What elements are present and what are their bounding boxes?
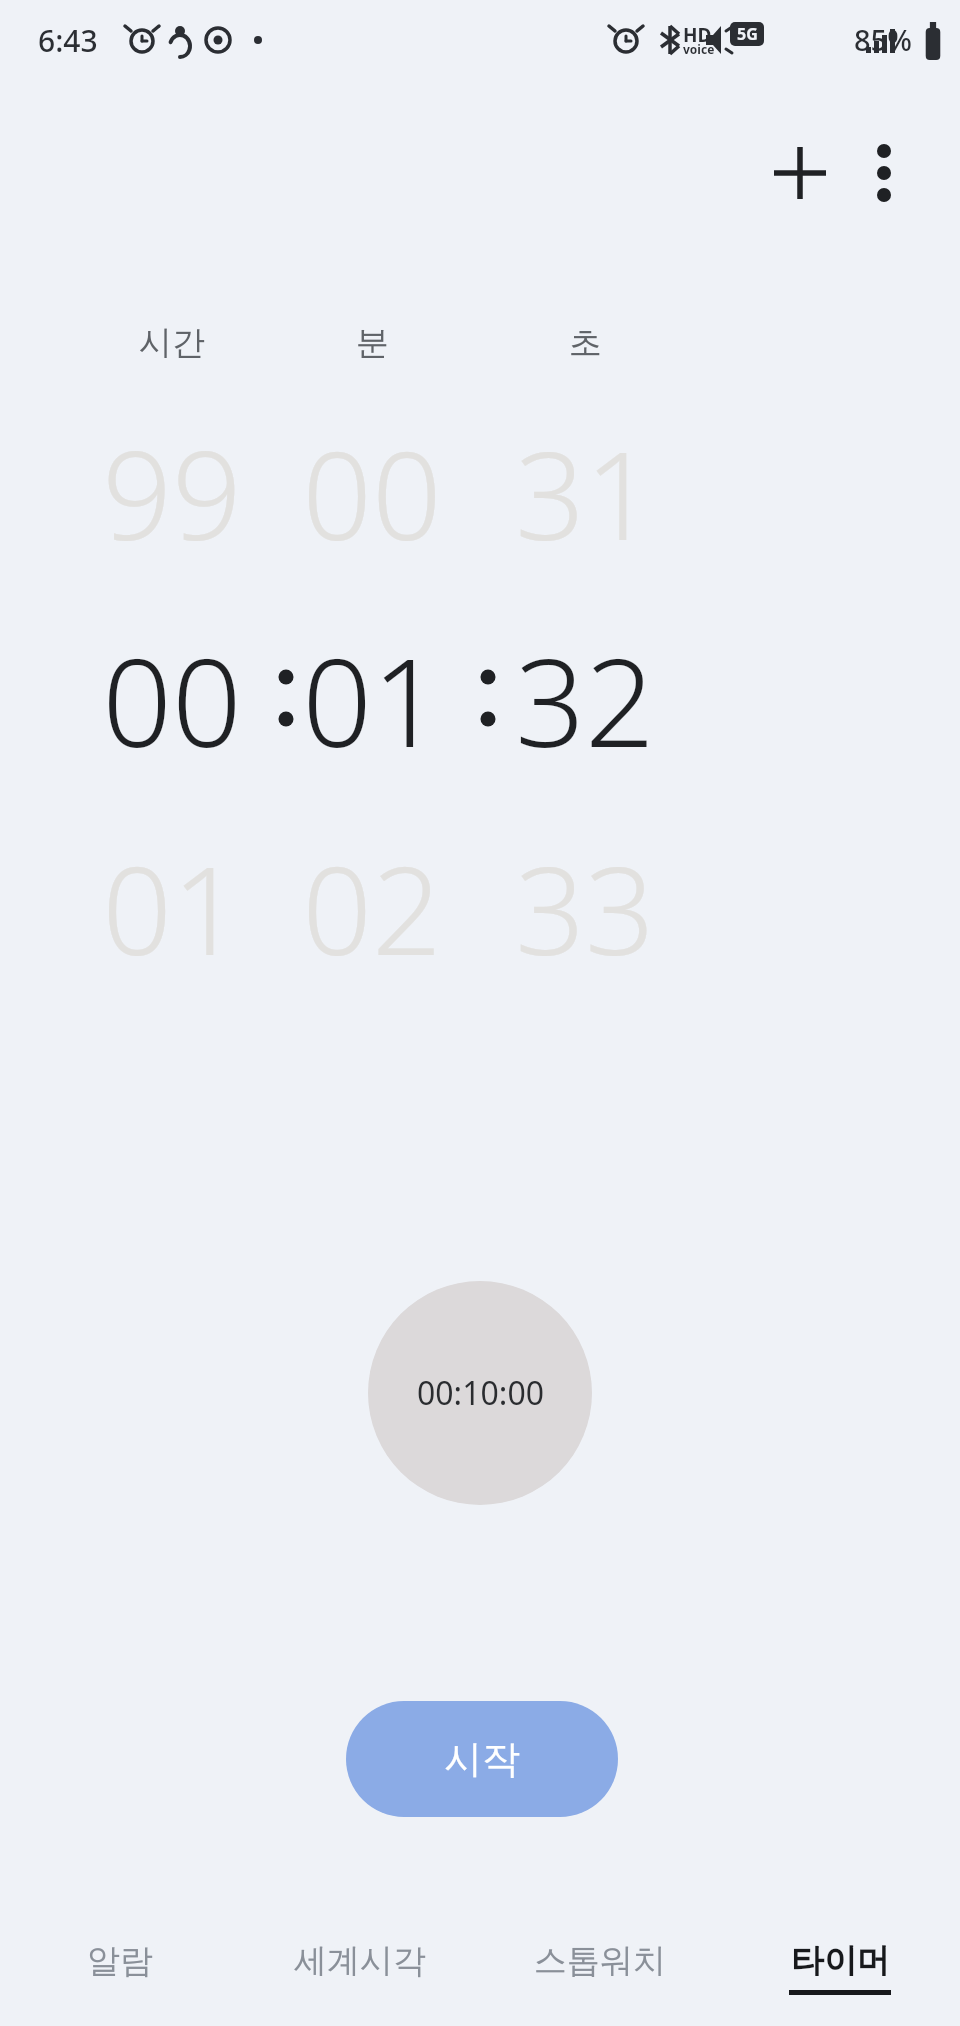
staticText: 00 bbox=[302, 410, 442, 570]
staticText: 01 bbox=[302, 617, 442, 777]
button[interactable]: 33 bbox=[475, 825, 695, 985]
staticText: 6:43 bbox=[38, 20, 98, 61]
button[interactable]: 99 bbox=[62, 410, 282, 570]
staticText: 33 bbox=[515, 825, 655, 985]
staticText: 99 bbox=[102, 410, 242, 570]
staticText: voice bbox=[683, 41, 715, 57]
button[interactable]: 00 bbox=[62, 617, 282, 777]
staticText: 타이머 bbox=[791, 1940, 890, 1982]
staticText: 알람 bbox=[87, 1940, 153, 1982]
staticText: 85% bbox=[854, 20, 912, 59]
button[interactable]: 32 bbox=[475, 617, 695, 777]
button[interactable]: 스톱워치 bbox=[480, 1930, 720, 2026]
button[interactable]: More options bbox=[836, 125, 932, 221]
button[interactable]: Add timer bbox=[752, 125, 848, 221]
staticText: 세계시각 bbox=[294, 1940, 426, 1982]
button[interactable]: 00:10:00 bbox=[368, 1281, 592, 1505]
staticText: HD bbox=[683, 22, 712, 48]
staticText: 31 bbox=[515, 410, 655, 570]
button[interactable]: 타이머 bbox=[720, 1930, 960, 2026]
button[interactable]: 01 bbox=[262, 617, 482, 777]
staticText: 32 bbox=[515, 617, 655, 777]
button[interactable]: 01 bbox=[62, 825, 282, 985]
staticText: 00:10:00 bbox=[417, 1371, 544, 1415]
staticText: 시작 bbox=[444, 1735, 520, 1783]
staticText: 02 bbox=[302, 825, 442, 985]
button[interactable]: 시작 bbox=[346, 1701, 618, 1817]
button[interactable]: 02 bbox=[262, 825, 482, 985]
staticText: 01 bbox=[102, 825, 242, 985]
staticText: 스톱워치 bbox=[534, 1940, 666, 1982]
button[interactable]: 00 bbox=[262, 410, 482, 570]
staticText: 시간 bbox=[139, 322, 205, 364]
staticText: 5G bbox=[737, 23, 758, 45]
staticText: 초 bbox=[569, 322, 602, 364]
staticText: 분 bbox=[356, 322, 389, 364]
button[interactable]: 31 bbox=[475, 410, 695, 570]
button[interactable]: 세계시각 bbox=[240, 1930, 480, 2026]
button[interactable]: 알람 bbox=[0, 1930, 240, 2026]
staticText: 00 bbox=[102, 617, 242, 777]
